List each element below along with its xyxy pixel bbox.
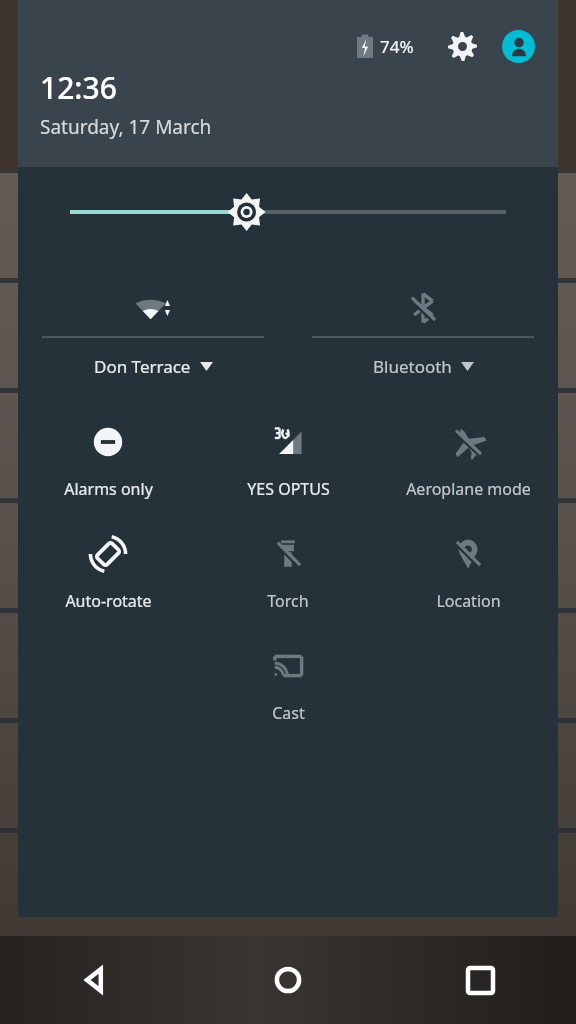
button[interactable]: 12:36 bbox=[40, 67, 212, 140]
button[interactable]: Alarms only bbox=[18, 412, 198, 500]
staticText: 74% bbox=[380, 35, 414, 58]
button[interactable]: Cast bbox=[198, 636, 378, 724]
staticText: 12:36 bbox=[40, 67, 117, 108]
button[interactable]: Don Terrace bbox=[18, 279, 288, 378]
staticText: Auto-rotate bbox=[65, 590, 152, 612]
staticText: Aeroplane mode bbox=[406, 478, 531, 500]
button[interactable]: Aeroplane mode bbox=[378, 412, 558, 500]
staticText: Cast bbox=[272, 702, 305, 724]
button[interactable]: Brightness bbox=[18, 167, 558, 257]
button[interactable]: Location bbox=[378, 524, 558, 612]
button[interactable]: Back bbox=[0, 936, 192, 1024]
button[interactable]: Settings bbox=[442, 26, 482, 66]
button[interactable]: Home bbox=[192, 936, 384, 1024]
button[interactable]: Recent apps bbox=[384, 936, 576, 1024]
other: Battery charging 74 percent bbox=[357, 34, 373, 58]
button[interactable]: Torch bbox=[198, 524, 378, 612]
button[interactable]: Bluetooth bbox=[288, 279, 558, 378]
staticText: Torch bbox=[267, 590, 309, 612]
staticText: Alarms only bbox=[64, 478, 153, 500]
staticText: Bluetooth bbox=[373, 355, 452, 378]
staticText: Location bbox=[436, 590, 501, 612]
staticText: Saturday, 17 March bbox=[40, 114, 212, 140]
button[interactable]: YES OPTUS bbox=[198, 412, 378, 500]
staticText: Don Terrace bbox=[94, 355, 191, 378]
staticText: YES OPTUS bbox=[247, 478, 330, 500]
button[interactable]: User profile bbox=[498, 26, 538, 66]
button[interactable]: Battery charging 74 percent bbox=[355, 34, 416, 58]
button[interactable]: Auto-rotate bbox=[18, 524, 198, 612]
